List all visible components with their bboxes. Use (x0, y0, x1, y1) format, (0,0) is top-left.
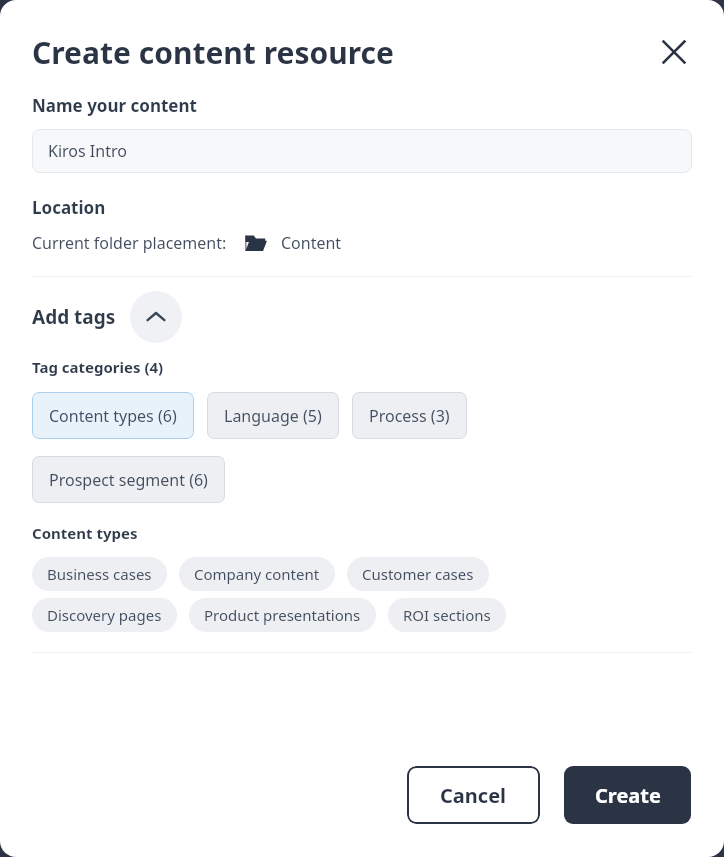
staticText: Customer cases (362, 564, 474, 584)
button[interactable]: Prospect segment (6) (32, 456, 225, 503)
button[interactable]: Kiros Intro (32, 129, 692, 173)
button[interactable]: Business cases (32, 557, 167, 591)
staticText: Content types (6) (49, 405, 177, 427)
staticText: Kiros Intro (48, 140, 127, 162)
staticText: Create (595, 782, 661, 809)
button[interactable]: Cancel (407, 766, 540, 824)
button[interactable]: Create (564, 766, 691, 824)
button[interactable]: Product presentations (189, 598, 376, 632)
staticText: Language (5) (224, 405, 322, 427)
staticText: Name your content (32, 94, 197, 117)
button[interactable]: Close (648, 26, 700, 78)
button[interactable]: Discovery pages (32, 598, 177, 632)
staticText: Location (32, 196, 106, 219)
staticText: Content (281, 232, 342, 254)
staticText: Cancel (440, 782, 507, 809)
staticText: Add tags (32, 304, 116, 330)
staticText: Content types (32, 523, 138, 543)
staticText: Tag categories (4) (32, 357, 164, 377)
staticText: Prospect segment (6) (49, 469, 208, 491)
staticText: Current folder placement: (32, 232, 227, 254)
button[interactable]: Process (3) (352, 392, 467, 439)
staticText: ROI sections (403, 605, 491, 625)
button[interactable]: Content types (6) (32, 392, 194, 439)
button[interactable]: Collapse tags (130, 291, 182, 343)
button[interactable]: Company content (179, 557, 335, 591)
staticText: Business cases (47, 564, 152, 584)
staticText: Product presentations (204, 605, 361, 625)
button[interactable]: ROI sections (388, 598, 506, 632)
button[interactable]: Customer cases (347, 557, 489, 591)
staticText: Process (3) (369, 405, 450, 427)
staticText: Discovery pages (47, 605, 162, 625)
button[interactable]: Language (5) (207, 392, 339, 439)
staticText: Create content resource (32, 32, 648, 73)
staticText: Company content (194, 564, 320, 584)
